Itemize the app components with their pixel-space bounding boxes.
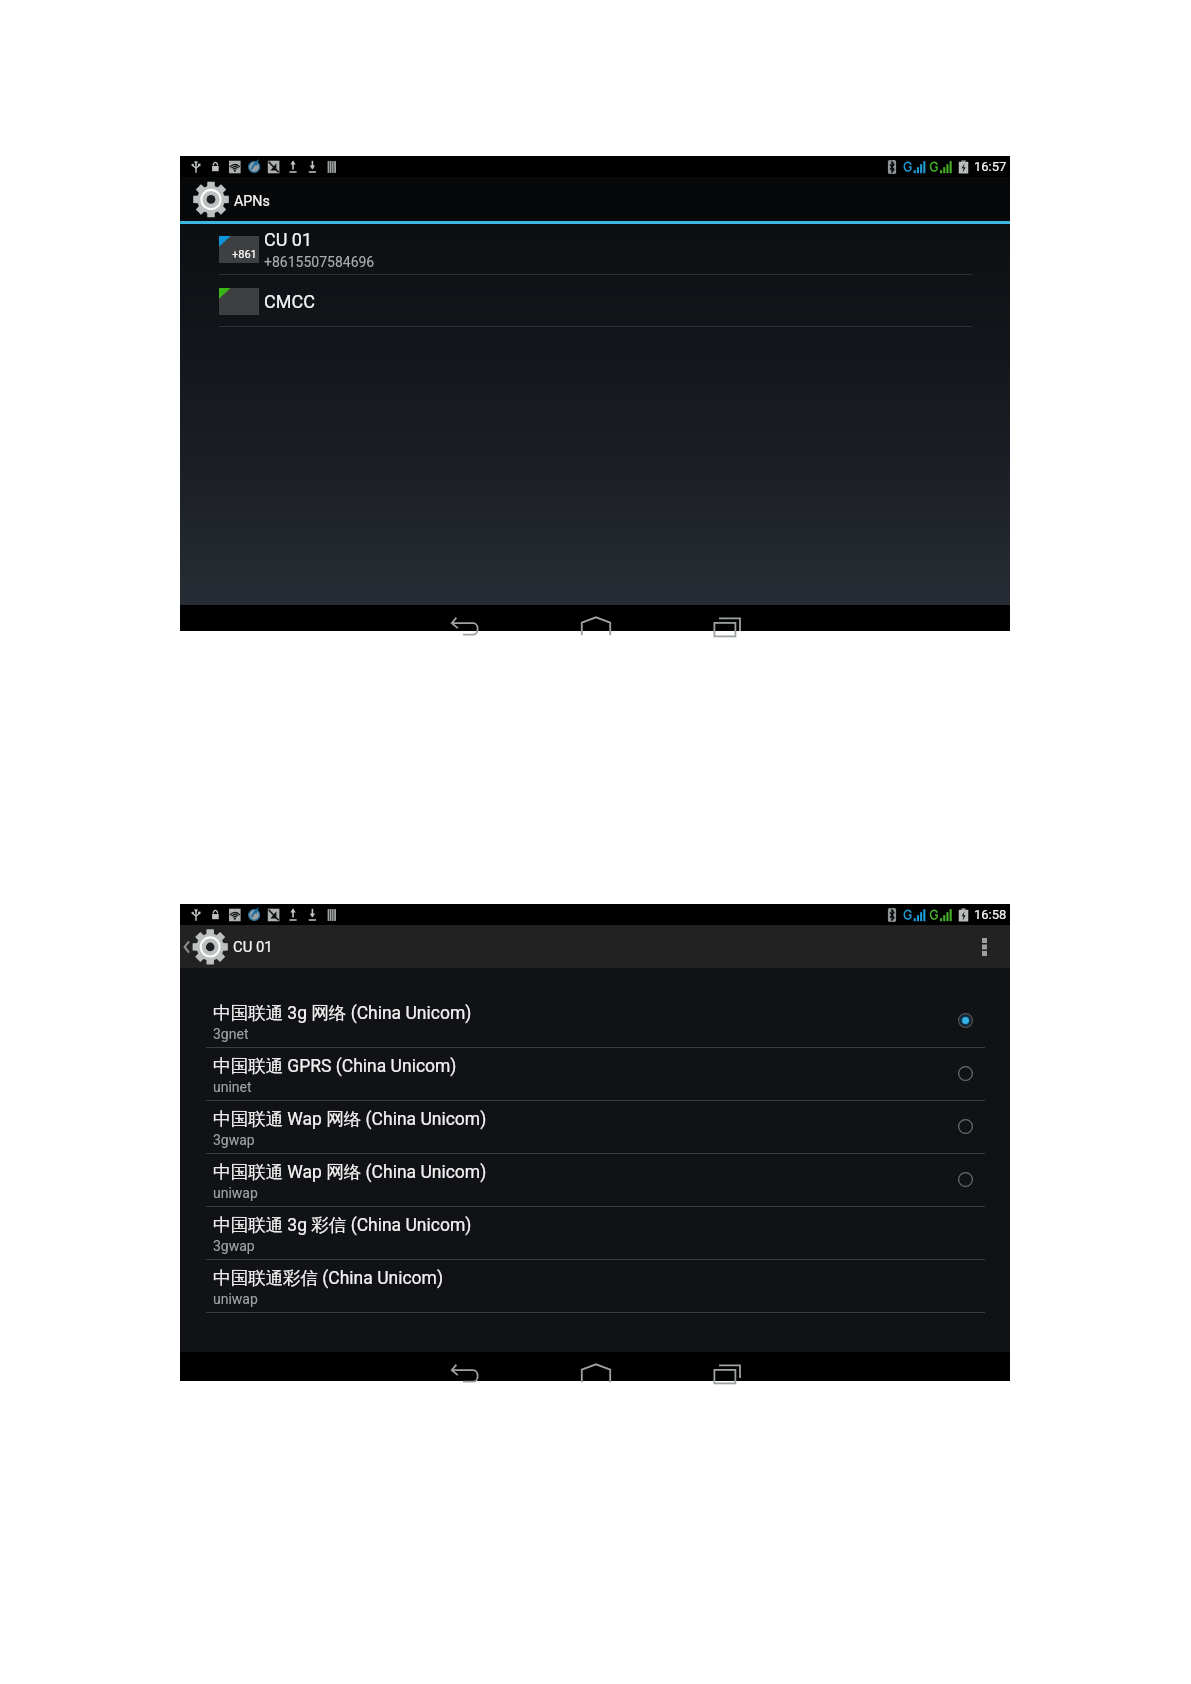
staticText: 中国联通 3g 彩信 (China Unicom) xyxy=(213,1214,472,1236)
staticText: +861 xyxy=(232,248,257,261)
button[interactable]: Home xyxy=(576,605,616,631)
staticText: uninet xyxy=(213,1079,252,1095)
button[interactable]: 中国联通 Wap 网络 (China Unicom) xyxy=(180,1101,1010,1154)
button[interactable]: 中国联通 3g 彩信 (China Unicom) xyxy=(180,1207,1010,1260)
staticText: CU 01 xyxy=(264,229,313,250)
button[interactable]: Back xyxy=(444,605,484,631)
button[interactable]: 中国联通 GPRS (China Unicom) xyxy=(180,1048,1010,1101)
staticText: CU 01 xyxy=(233,938,273,955)
staticText: 16:57 xyxy=(974,159,1007,174)
staticText: 中国联通 Wap 网络 (China Unicom) xyxy=(213,1161,487,1183)
button[interactable]: Recent apps xyxy=(707,1352,747,1381)
button[interactable]: Back xyxy=(444,1352,484,1381)
staticText: uniwap xyxy=(213,1185,258,1201)
staticText: 3gwap xyxy=(213,1238,255,1254)
button[interactable]: 中国联通 Wap 网络 (China Unicom) xyxy=(180,1154,1010,1207)
staticText: 中国联通彩信 (China Unicom) xyxy=(213,1267,443,1289)
button[interactable]: APNs xyxy=(180,177,1010,221)
staticText: uniwap xyxy=(213,1291,258,1307)
button[interactable]: More options xyxy=(960,925,1010,968)
staticText: 中国联通 3g 网络 (China Unicom) xyxy=(213,1002,472,1024)
staticText: CMCC xyxy=(264,291,315,312)
button[interactable]: +861 xyxy=(180,224,1010,275)
staticText: APNs xyxy=(234,193,270,210)
button[interactable]: Recent apps xyxy=(707,605,747,631)
staticText: 中国联通 GPRS (China Unicom) xyxy=(213,1055,457,1077)
staticText: 3gnet xyxy=(213,1026,249,1042)
staticText: +8615507584696 xyxy=(264,254,375,270)
button[interactable]: Home xyxy=(576,1352,616,1381)
button[interactable]: CU 01 xyxy=(180,925,273,968)
button[interactable]: CMCC xyxy=(180,275,1010,327)
staticText: 3gwap xyxy=(213,1132,255,1148)
staticText: 16:58 xyxy=(974,907,1007,922)
staticText: 中国联通 Wap 网络 (China Unicom) xyxy=(213,1108,487,1130)
button[interactable]: 中国联通 3g 网络 (China Unicom) xyxy=(180,995,1010,1048)
button[interactable]: 中国联通彩信 (China Unicom) xyxy=(180,1260,1010,1313)
